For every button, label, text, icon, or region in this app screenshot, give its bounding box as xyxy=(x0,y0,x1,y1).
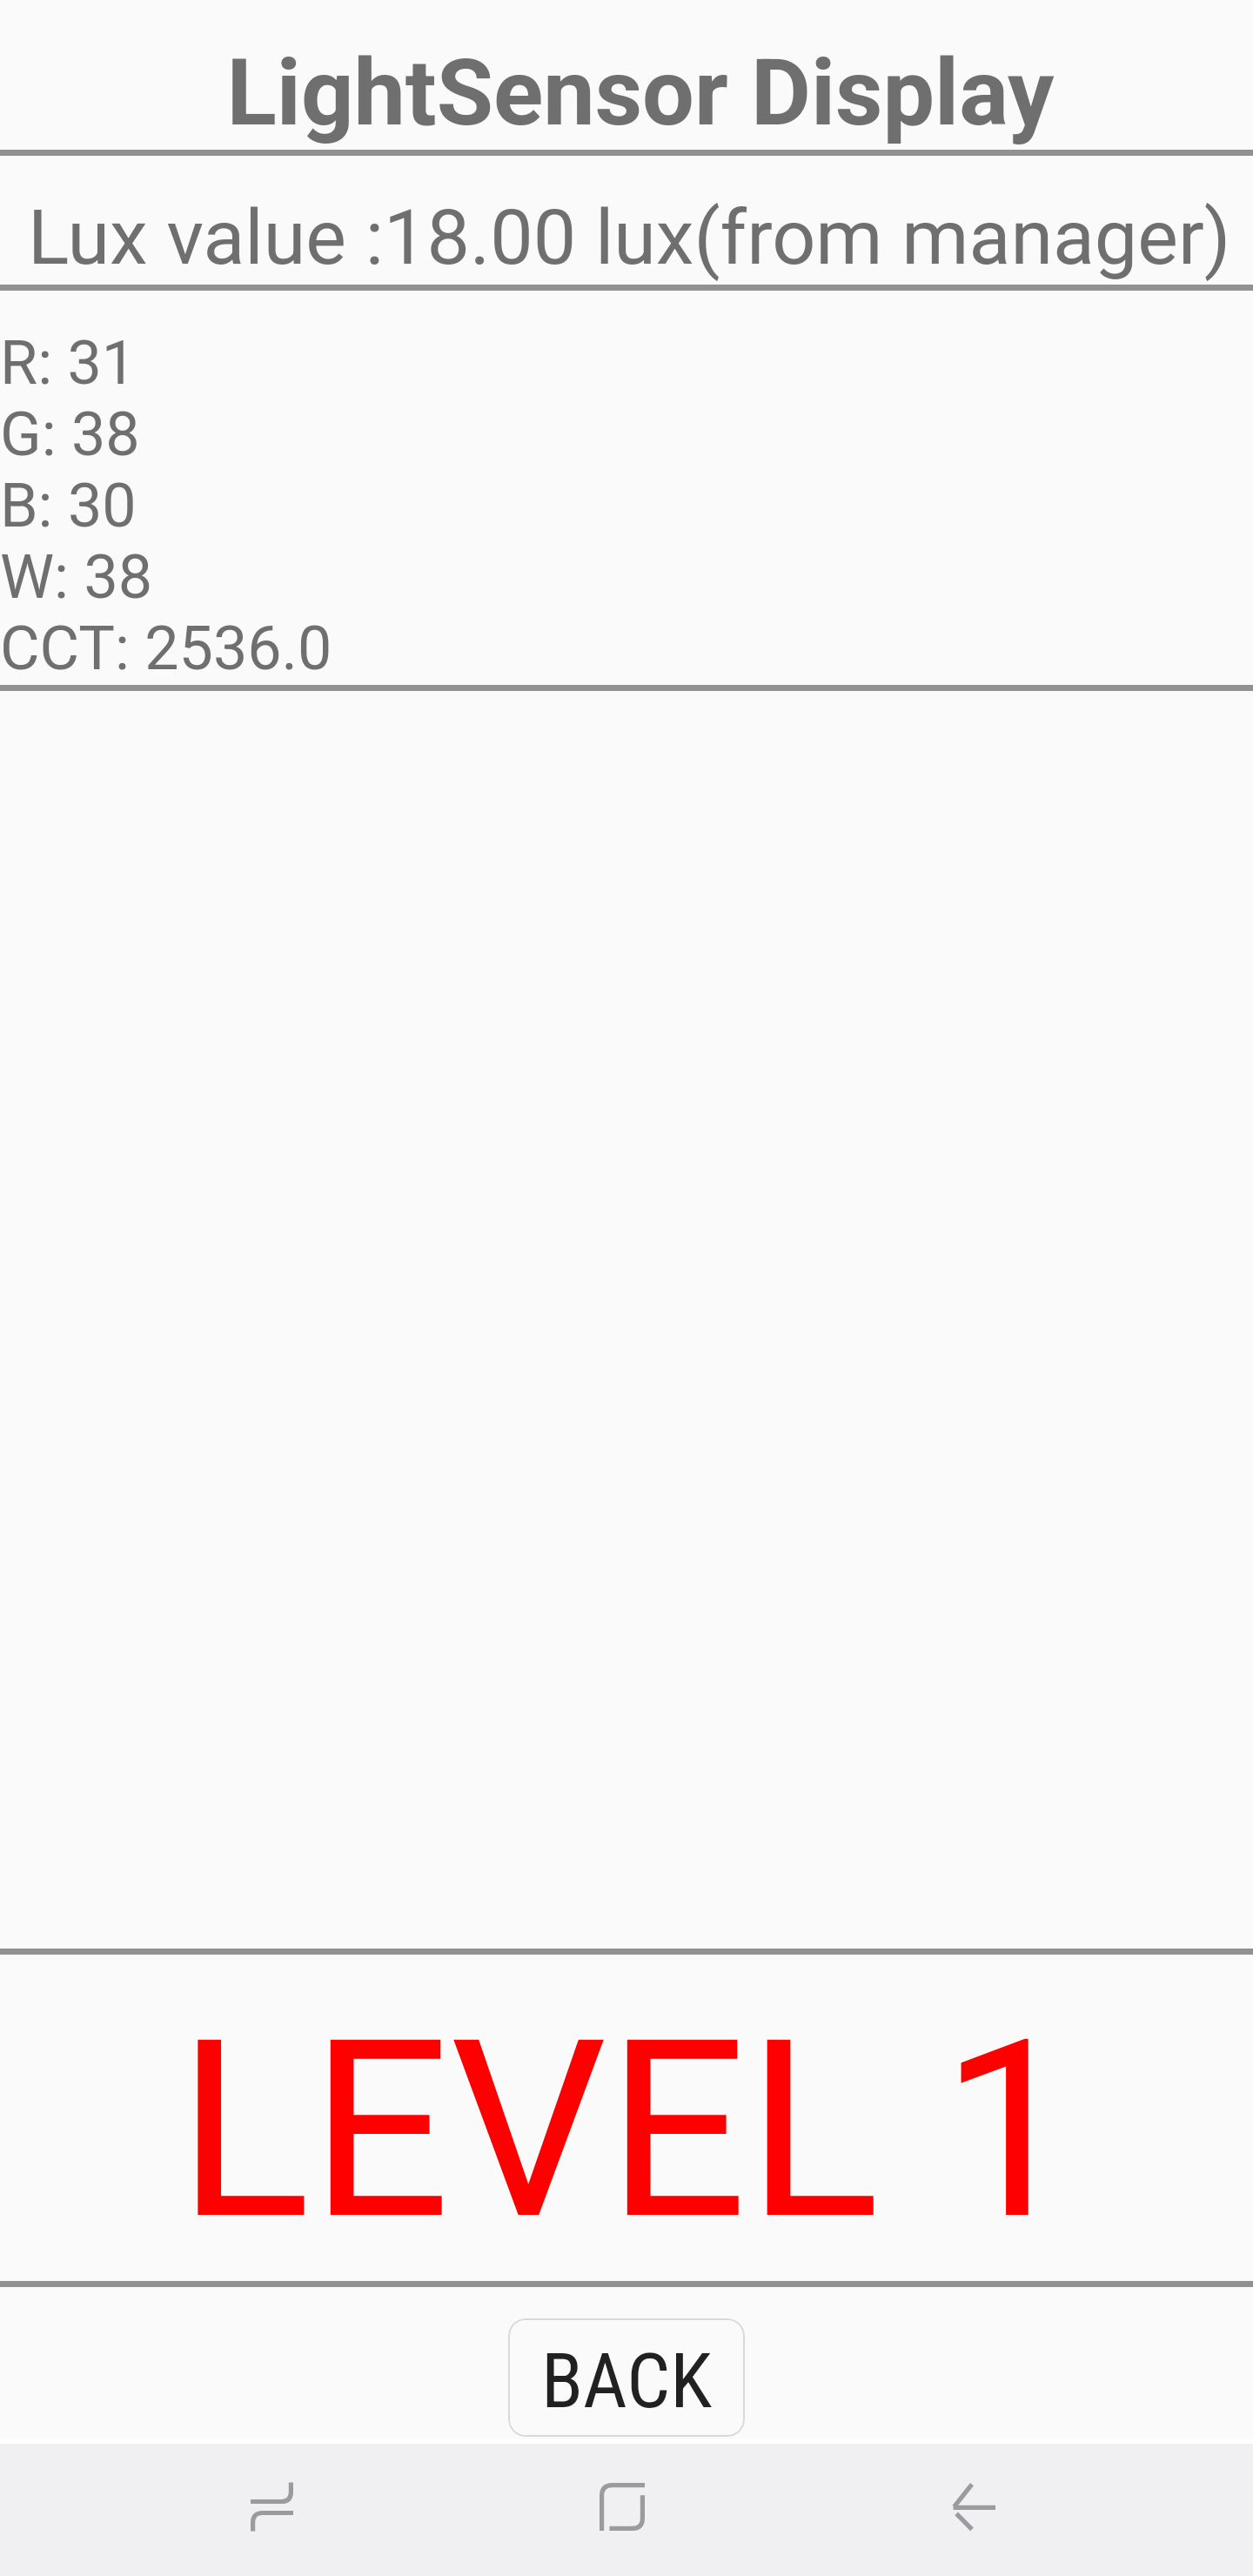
button[interactable]: Recents xyxy=(155,2444,388,2569)
button[interactable]: Back xyxy=(856,2444,1089,2569)
staticText: R: 31 G: 38 B: 30 W: 38 CCT: 2536.0 xyxy=(0,327,332,684)
button[interactable]: BACK xyxy=(508,2318,745,2437)
button[interactable]: Home xyxy=(506,2444,739,2569)
staticText: LightSensor Display xyxy=(14,39,1253,147)
staticText: BACK xyxy=(541,2336,713,2425)
staticText: Lux value :18.00 lux(from manager) xyxy=(28,192,1231,282)
staticText: LEVEL 1 xyxy=(2,1986,1253,2275)
